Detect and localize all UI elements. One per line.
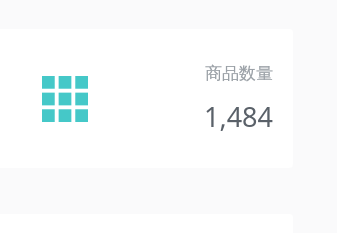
staticText: 商品数量 (205, 63, 273, 84)
button[interactable]: 商品数量 (0, 29, 293, 168)
staticText: 1,484 (203, 98, 273, 135)
other: 商品数量 (42, 76, 88, 122)
